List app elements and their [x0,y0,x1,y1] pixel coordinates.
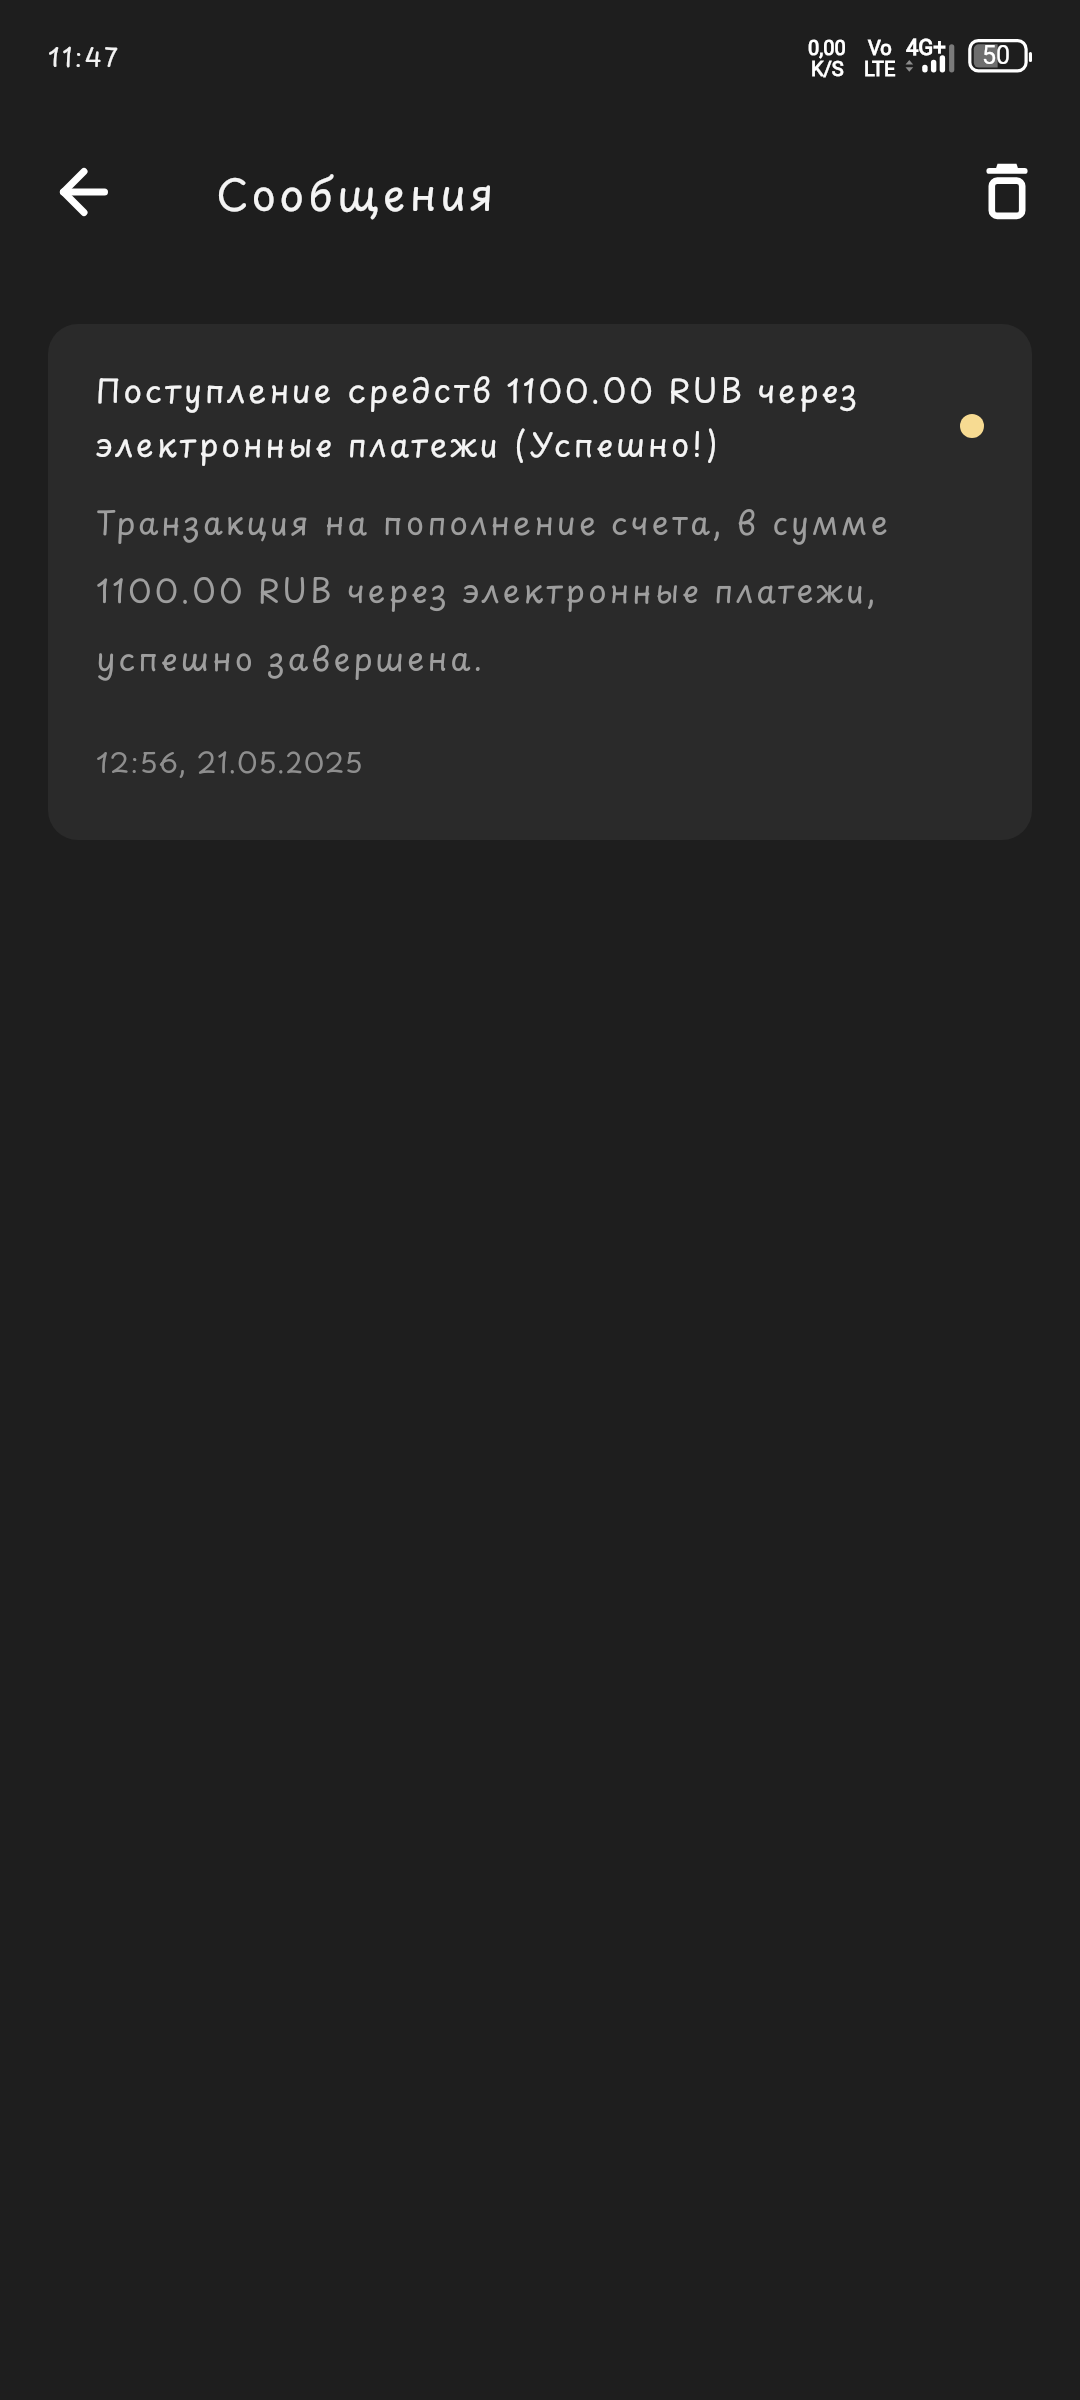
staticText: 4G+ [906,37,946,60]
staticText: Vo [868,38,892,59]
staticText: 50 [982,43,1011,70]
staticText: 11:47 [48,42,121,74]
button[interactable]: Back [40,148,128,236]
staticText: Сообщения [216,166,499,224]
staticText: Транзакция на пополнение счета, в сумме … [96,482,896,686]
staticText: Поступление средств 1100.00 RUB через эл… [96,361,896,469]
staticText: 0,00 [808,38,846,59]
staticText: K/S [811,59,844,80]
staticText: 12:56, 21.05.2025 [96,740,364,782]
staticText: LTE [864,59,896,80]
button[interactable]: Delete all messages [963,148,1051,236]
button[interactable]: Поступление средств 1100.00 RUB через эл… [48,324,1032,840]
